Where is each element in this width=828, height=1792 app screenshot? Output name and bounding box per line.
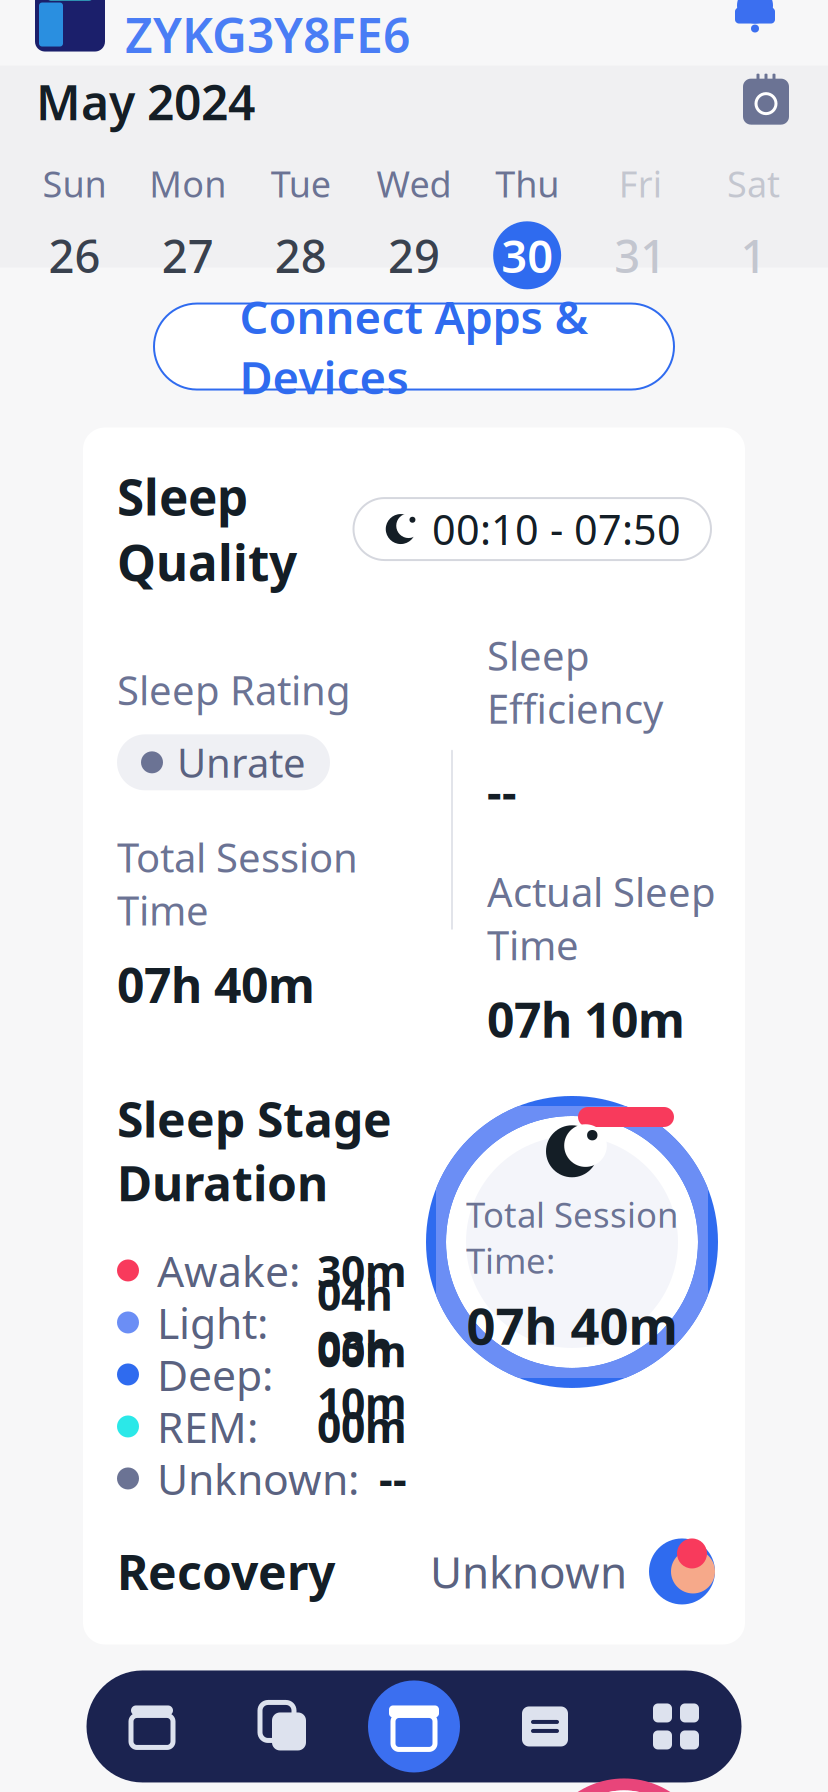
staticText: ZYKG3Y8FE6 — [125, 3, 410, 66]
staticText: Mon — [149, 159, 226, 207]
button[interactable]: Tue — [244, 159, 357, 291]
staticText: Awake: — [157, 1242, 300, 1299]
staticText: 00m — [317, 1398, 407, 1455]
staticText: 07h 40m — [117, 953, 315, 1016]
button[interactable]: Sat — [697, 159, 810, 291]
button[interactable]: News — [479, 1670, 610, 1782]
button[interactable]: Connect Apps & Devices — [154, 303, 674, 389]
staticText: 30 — [501, 225, 553, 285]
button[interactable]: Home — [86, 1670, 217, 1782]
staticText: 07h 40m — [466, 1291, 677, 1359]
staticText: Fri — [619, 159, 662, 207]
staticText: -- — [379, 1450, 407, 1507]
staticText: 00:10 - 07:50 — [432, 502, 681, 556]
button[interactable]: Thu — [471, 159, 584, 291]
staticText: Light: — [157, 1294, 268, 1351]
staticText: Thu — [495, 159, 559, 207]
staticText: Sleep Stage Duration — [117, 1087, 392, 1214]
button[interactable]: Store — [348, 1670, 479, 1782]
staticText: Sleep Efficiency — [487, 629, 663, 735]
staticText: Actual Sleep Time — [487, 865, 716, 971]
staticText: 29 — [388, 225, 440, 285]
staticText: Sleep Quality — [117, 463, 297, 594]
button[interactable]: Mon — [131, 159, 244, 291]
staticText: Sleep Rating — [117, 663, 351, 716]
staticText: 27 — [162, 225, 214, 285]
button[interactable]: Notifications — [724, 0, 786, 40]
staticText: 31 — [614, 225, 666, 285]
button[interactable]: Wed — [357, 159, 470, 291]
staticText: -- — [487, 761, 517, 821]
staticText: 04h 00m — [317, 1266, 407, 1379]
staticText: Connect Apps & Devices — [239, 286, 588, 407]
staticText: REM: — [157, 1398, 258, 1455]
staticText: Unknown: — [157, 1450, 359, 1507]
staticText: Wed — [376, 159, 451, 207]
button[interactable]: 00:10 - 07:50 — [353, 498, 711, 560]
button[interactable]: Pick date — [740, 76, 792, 128]
button[interactable]: Sun — [18, 159, 131, 291]
staticText: 07h 10m — [487, 987, 685, 1051]
staticText: 28 — [275, 225, 327, 285]
staticText: Unrate — [177, 736, 306, 789]
staticText: Total Session Time: — [466, 1191, 678, 1283]
staticText: 30m — [317, 1242, 407, 1299]
staticText: Total Session Time — [117, 830, 358, 936]
staticText: Unknown — [430, 1542, 627, 1601]
staticText: Deep: — [157, 1346, 273, 1403]
staticText: Recovery — [117, 1540, 335, 1603]
staticText: May 2024 — [36, 70, 255, 133]
staticText: Sun — [43, 159, 107, 207]
button[interactable]: Fri — [584, 159, 697, 291]
staticText: 1 — [740, 225, 766, 285]
staticText: 03h 10m — [317, 1318, 407, 1431]
staticText: Sat — [727, 159, 780, 207]
staticText: Tue — [271, 159, 331, 207]
staticText: 26 — [49, 225, 101, 285]
button[interactable]: More — [610, 1670, 741, 1782]
button[interactable]: Records — [217, 1670, 348, 1782]
